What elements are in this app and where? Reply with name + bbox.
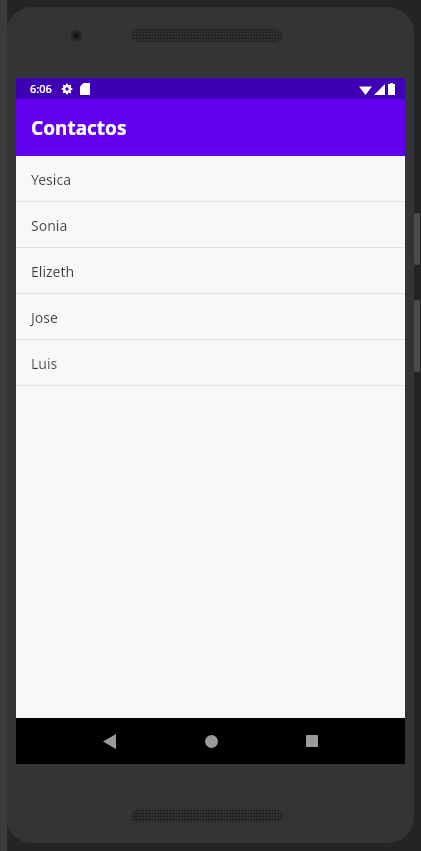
button[interactable]: Luis <box>16 340 405 386</box>
staticText: Jose <box>31 308 58 327</box>
button[interactable]: Yesica <box>16 156 405 202</box>
button[interactable]: Elizeth <box>16 248 405 294</box>
button[interactable]: Jose <box>16 294 405 340</box>
button[interactable]: Home <box>188 718 234 764</box>
button[interactable]: Back <box>86 718 132 764</box>
staticText: Sonia <box>31 216 68 235</box>
staticText: 6:06 <box>30 81 52 96</box>
staticText: Contactos <box>31 115 127 141</box>
button[interactable]: Recent apps <box>289 718 335 764</box>
button[interactable]: Sonia <box>16 202 405 248</box>
staticText: Luis <box>31 354 58 373</box>
staticText: Elizeth <box>31 262 75 281</box>
staticText: Yesica <box>31 170 72 189</box>
